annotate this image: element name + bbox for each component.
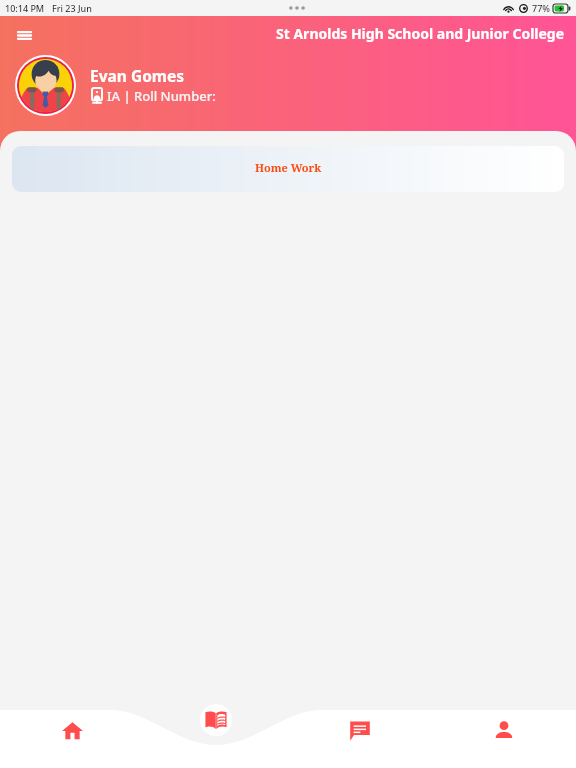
button[interactable]: Profile [432,710,576,768]
staticText: 77% [532,2,550,14]
staticText: Fri 23 Jun [52,2,92,14]
button[interactable]: Home Work [200,704,232,736]
staticText: Home Work [255,160,322,175]
staticText: IA | Roll Number: [107,87,216,105]
button[interactable]: Menu [9,20,39,50]
staticText: Evan Gomes [90,65,184,86]
staticText: 10:14 PM [5,2,45,14]
button[interactable]: Home [0,710,144,768]
button[interactable]: Home Work [12,146,564,192]
button[interactable]: Home Work [144,710,288,768]
button[interactable]: Messages [288,710,432,768]
staticText: St Arnolds High School and Junior Colleg… [276,24,565,43]
